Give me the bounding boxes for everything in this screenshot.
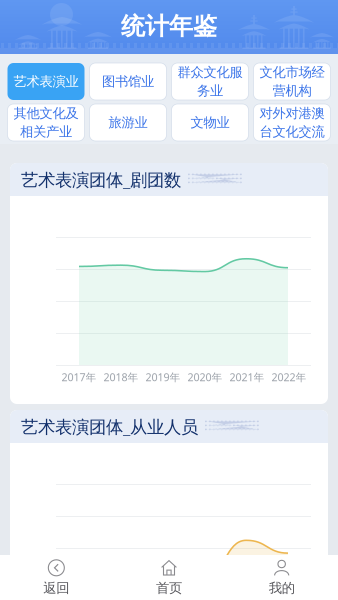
staticText: 群众文化服: [177, 64, 242, 80]
staticText: 旅游业: [108, 114, 147, 131]
staticText: 2018年: [103, 370, 138, 384]
button[interactable]: 旅游业: [89, 104, 166, 141]
button[interactable]: 文物业: [171, 104, 248, 141]
button[interactable]: 群众文化服: [171, 63, 248, 100]
staticText: 统计年鉴: [121, 11, 217, 41]
button[interactable]: 返回: [0, 555, 113, 600]
staticText: 文化市场经: [259, 64, 324, 80]
staticText: 返回: [43, 580, 69, 596]
button[interactable]: 对外对港澳: [253, 104, 330, 141]
button[interactable]: 我的: [225, 555, 338, 600]
staticText: 务业: [197, 82, 223, 99]
staticText: 2020年: [187, 370, 222, 384]
staticText: 2022年: [271, 370, 306, 384]
staticText: 2017年: [61, 370, 96, 384]
button[interactable]: 其他文化及: [7, 104, 84, 141]
staticText: 首页: [156, 580, 182, 596]
staticText: 营机构: [272, 82, 311, 99]
staticText: 其他文化及: [13, 105, 78, 121]
staticText: 文物业: [190, 114, 229, 131]
staticText: 对外对港澳: [259, 105, 324, 121]
staticText: 我的: [269, 580, 295, 596]
staticText: 艺术表演团体_剧团数: [21, 168, 181, 191]
button[interactable]: 首页: [113, 555, 225, 600]
button[interactable]: 图书馆业: [89, 63, 166, 100]
staticText: 台文化交流: [259, 123, 324, 140]
staticText: 艺术表演业: [13, 73, 78, 90]
button[interactable]: 艺术表演业: [7, 63, 84, 100]
staticText: 图书馆业: [102, 73, 154, 90]
staticText: 相关产业: [20, 123, 72, 140]
staticText: 2019年: [145, 370, 180, 384]
button[interactable]: 文化市场经: [253, 63, 330, 100]
staticText: 艺术表演团体_从业人员: [21, 415, 198, 438]
staticText: 2021年: [229, 370, 264, 384]
